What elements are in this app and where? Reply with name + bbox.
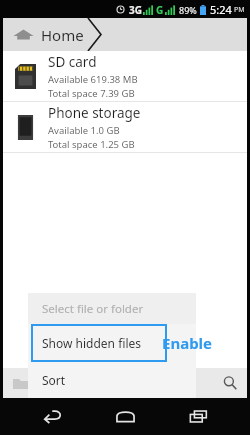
staticText: G (156, 3, 164, 17)
button[interactable]: Sort (28, 362, 196, 398)
button[interactable]: Home (3, 18, 247, 51)
staticText: Available 619.38 MB (48, 73, 138, 86)
button[interactable]: Phone storage (3, 102, 247, 152)
staticText: PM (234, 5, 245, 15)
button[interactable]: Recent apps (178, 398, 218, 435)
button[interactable]: Back (33, 398, 73, 435)
staticText: Total space 1.25 GB (48, 138, 135, 151)
staticText: Enable (162, 333, 213, 353)
staticText: Show hidden files (42, 335, 141, 351)
staticText: Sort (42, 372, 66, 388)
staticText: 5:24 (210, 2, 232, 17)
button[interactable]: Search (220, 373, 240, 393)
button[interactable]: Home (105, 398, 145, 435)
button[interactable]: Folder (10, 373, 30, 393)
staticText: Total space 7.39 GB (48, 87, 135, 100)
staticText: 3G (129, 3, 142, 17)
staticText: Home (41, 25, 84, 45)
staticText: Select file or folder (42, 301, 144, 317)
staticText: Available 1.0 GB (48, 124, 120, 137)
button[interactable]: Show hidden files (28, 324, 196, 362)
button[interactable]: SD card (3, 51, 247, 101)
staticText: 89% (179, 4, 197, 16)
staticText: Phone storage (48, 104, 141, 122)
staticText: SD card (48, 53, 97, 71)
